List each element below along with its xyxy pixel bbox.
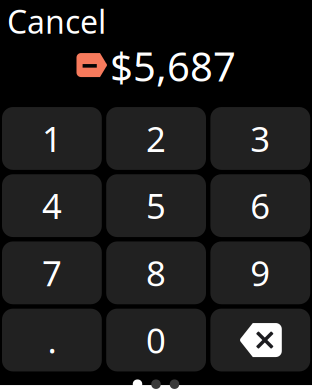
staticText: 2	[146, 115, 166, 161]
button[interactable]: Cancel	[0, 0, 106, 37]
button[interactable]: 7	[2, 241, 102, 304]
button[interactable]: 0	[106, 309, 206, 371]
button[interactable]: 5	[106, 174, 206, 237]
staticText: 1	[42, 115, 62, 161]
staticText: 0	[146, 317, 166, 363]
staticText: 9	[250, 250, 270, 296]
staticText: 4	[42, 183, 62, 229]
button[interactable]: 6	[210, 174, 310, 237]
button[interactable]: 1	[2, 107, 102, 170]
button[interactable]: 2	[106, 107, 206, 170]
button[interactable]: 9	[210, 241, 310, 304]
staticText: $5,687	[110, 39, 236, 93]
staticText: 6	[250, 183, 270, 229]
staticText: .	[47, 317, 56, 363]
button[interactable]: Delete	[210, 309, 310, 371]
button[interactable]: 3	[210, 107, 310, 170]
button[interactable]: 8	[106, 241, 206, 304]
staticText: 3	[250, 115, 270, 161]
button[interactable]: .	[2, 309, 102, 371]
staticText: 7	[42, 250, 62, 296]
button[interactable]: 4	[2, 174, 102, 237]
staticText: 5	[146, 183, 166, 229]
staticText: 8	[146, 250, 166, 296]
staticText: Cancel	[7, 0, 106, 43]
